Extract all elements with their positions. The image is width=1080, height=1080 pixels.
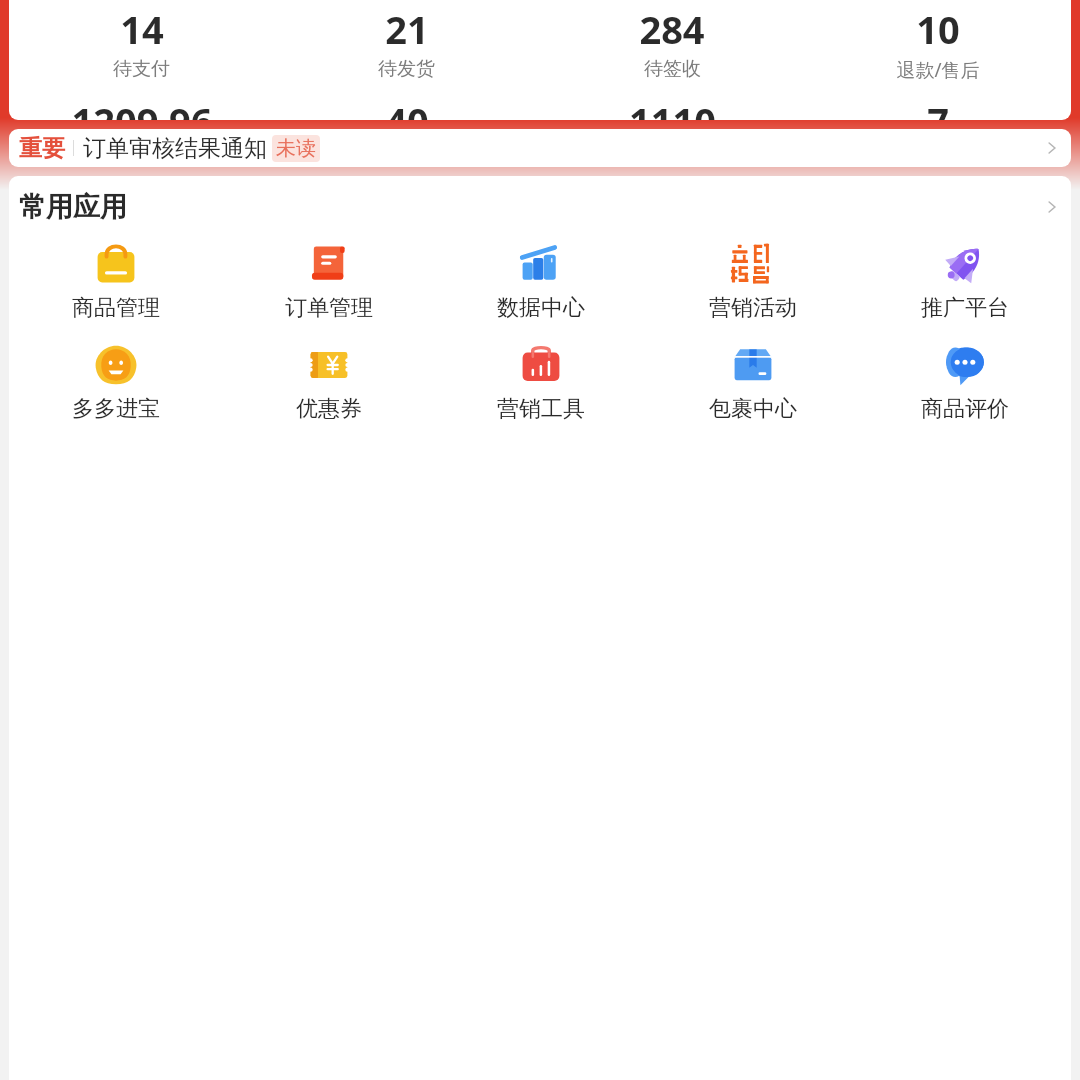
staticText: 待签收 bbox=[644, 57, 701, 81]
staticText: 多多进宝 bbox=[72, 395, 160, 423]
staticText: 待发货 bbox=[378, 57, 435, 81]
button[interactable]: 14 bbox=[9, 3, 274, 81]
staticText: 14 bbox=[120, 3, 164, 55]
button[interactable]: 商品评价 bbox=[859, 339, 1071, 426]
button[interactable]: 常用应用 bbox=[9, 176, 1071, 238]
staticText: 商品评价 bbox=[921, 395, 1009, 423]
staticText: 退款/售后 bbox=[896, 57, 980, 83]
staticText: 营销工具 bbox=[497, 395, 585, 423]
staticText: 商品管理 bbox=[72, 294, 160, 322]
staticText: 未读 bbox=[276, 136, 316, 161]
button[interactable]: 7 bbox=[805, 95, 1071, 120]
staticText: 常用应用 bbox=[19, 190, 127, 224]
other: More bbox=[1043, 198, 1061, 216]
button[interactable]: 10 bbox=[805, 3, 1071, 83]
button[interactable]: 订单管理 bbox=[222, 238, 435, 325]
button[interactable]: 重要 bbox=[9, 129, 1071, 167]
button[interactable]: 多多进宝 bbox=[9, 339, 222, 426]
button[interactable]: 40 bbox=[274, 95, 539, 120]
button[interactable]: 21 bbox=[274, 3, 539, 81]
staticText: 10 bbox=[916, 3, 960, 55]
button[interactable]: 商品管理 bbox=[9, 238, 222, 325]
staticText: 1110 bbox=[629, 95, 716, 120]
staticText: 21 bbox=[385, 3, 429, 55]
staticText: 重要 bbox=[19, 134, 65, 163]
button[interactable]: 包裹中心 bbox=[647, 339, 859, 426]
staticText: 营销活动 bbox=[709, 294, 797, 322]
button[interactable]: 优惠券 bbox=[222, 339, 435, 426]
button[interactable]: 推广平台 bbox=[859, 238, 1071, 325]
button[interactable]: 284 bbox=[539, 3, 805, 81]
other: More bbox=[1043, 139, 1061, 157]
button[interactable]: 1110 bbox=[539, 95, 805, 120]
staticText: 待支付 bbox=[113, 57, 170, 81]
staticText: 7 bbox=[927, 95, 949, 120]
staticText: 订单管理 bbox=[285, 294, 373, 322]
button[interactable]: 数据中心 bbox=[435, 238, 647, 325]
button[interactable]: 1209.96 bbox=[9, 95, 274, 120]
staticText: 订单审核结果通知 bbox=[83, 134, 267, 163]
staticText: 推广平台 bbox=[921, 294, 1009, 322]
staticText: 优惠券 bbox=[296, 395, 362, 423]
staticText: 包裹中心 bbox=[709, 395, 797, 423]
staticText: 1209.96 bbox=[71, 95, 213, 120]
button[interactable]: 营销工具 bbox=[435, 339, 647, 426]
staticText: 284 bbox=[639, 3, 705, 55]
staticText: 数据中心 bbox=[497, 294, 585, 322]
staticText: 40 bbox=[385, 95, 429, 120]
button[interactable]: 营销活动 bbox=[647, 238, 859, 325]
